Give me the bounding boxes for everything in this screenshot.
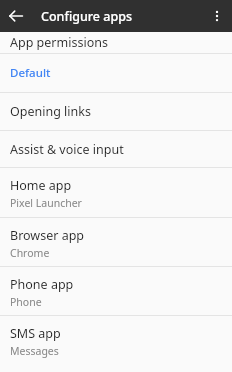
button[interactable]: Home app [0,168,232,217]
button[interactable]: Back [7,7,25,25]
staticText: Home app [10,177,72,194]
staticText: Chrome [10,246,50,260]
staticText: Assist & voice input [10,141,124,158]
staticText: Messages [10,344,59,358]
button[interactable]: SMS app [0,316,232,365]
button[interactable]: More options [208,7,226,25]
button[interactable]: Browser app [0,218,232,266]
staticText: App permissions [10,34,108,51]
staticText: Default [10,65,51,81]
staticText: Opening links [10,103,91,120]
staticText: Browser app [10,227,85,244]
button[interactable]: App permissions [0,32,232,53]
staticText: Configure apps [41,8,133,25]
button[interactable]: Phone app [0,267,232,315]
button[interactable]: Opening links [0,93,232,130]
staticText: SMS app [10,325,61,342]
button[interactable]: Assist & voice input [0,131,232,167]
staticText: Phone [10,295,42,309]
staticText: Pixel Launcher [10,196,82,210]
staticText: Phone app [10,276,74,293]
